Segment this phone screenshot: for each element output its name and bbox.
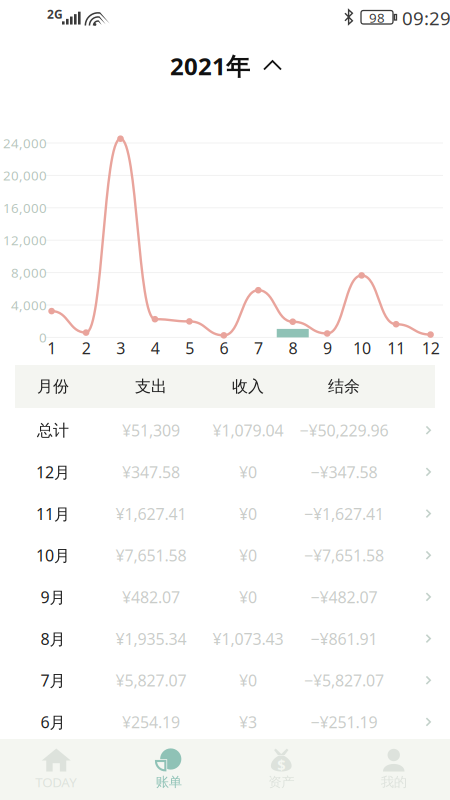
staticText: 98 — [369, 9, 385, 26]
staticText: −¥1,627.41 — [304, 503, 384, 524]
button[interactable]: 9月 — [15, 576, 435, 618]
staticText: 9 — [323, 337, 332, 359]
staticText: TODAY — [35, 773, 77, 791]
staticText: 0 — [39, 328, 47, 346]
staticText: 16,000 — [3, 199, 47, 217]
button[interactable]: 11月 — [15, 493, 435, 534]
staticText: $ — [277, 755, 285, 774]
button[interactable]: 7月 — [15, 659, 435, 701]
staticText: ¥1,079.04 — [212, 420, 283, 441]
staticText: ¥1,627.41 — [115, 503, 186, 524]
staticText: ¥347.58 — [122, 461, 180, 483]
staticText: 10 — [353, 337, 371, 359]
staticText: ¥0 — [239, 586, 257, 608]
staticText: −¥7,651.58 — [304, 545, 384, 566]
staticText: 4,000 — [11, 296, 47, 314]
staticText: 1 — [47, 337, 56, 359]
button[interactable]: 总计 — [15, 409, 435, 451]
staticText: 12 — [422, 337, 440, 359]
staticText: 收入 — [232, 377, 264, 396]
staticText: ¥0 — [239, 545, 257, 566]
staticText: −¥347.58 — [310, 461, 377, 483]
staticText: 8 — [288, 337, 297, 359]
staticText: 12月 — [36, 461, 70, 483]
staticText: 20,000 — [3, 166, 47, 184]
staticText: 资产 — [268, 774, 294, 790]
staticText: 5 — [185, 337, 194, 359]
staticText: 2G — [47, 6, 63, 22]
staticText: 11月 — [36, 503, 70, 524]
staticText: ¥3 — [239, 711, 257, 733]
staticText: 8,000 — [11, 264, 47, 281]
button[interactable]: 8月 — [15, 618, 435, 660]
staticText: ¥51,309 — [122, 420, 180, 441]
staticText: ¥0 — [239, 503, 257, 524]
staticText: 6 — [220, 337, 229, 359]
staticText: 7月 — [40, 670, 65, 691]
staticText: 09:29 — [402, 6, 450, 30]
button[interactable]: 12月 — [15, 451, 435, 493]
staticText: 24,000 — [3, 134, 47, 152]
staticText: 支出 — [135, 377, 167, 396]
button[interactable]: $ — [225, 739, 337, 800]
button[interactable]: TODAY — [0, 739, 112, 800]
staticText: 总计 — [37, 420, 69, 440]
button[interactable]: 2021年 — [170, 52, 282, 80]
button[interactable]: 10月 — [15, 534, 435, 576]
staticText: −¥251.19 — [310, 711, 377, 733]
staticText: 6月 — [40, 711, 65, 733]
staticText: 结余 — [328, 377, 360, 396]
staticText: 12,000 — [3, 231, 47, 249]
staticText: 我的 — [381, 774, 407, 790]
staticText: ¥0 — [239, 461, 257, 483]
staticText: −¥861.91 — [310, 628, 377, 649]
staticText: ¥1,073.43 — [212, 628, 283, 649]
button[interactable]: 6月 — [15, 701, 435, 743]
staticText: 10月 — [36, 545, 70, 566]
staticText: −¥482.07 — [310, 586, 377, 608]
staticText: 4 — [151, 337, 160, 359]
staticText: 3 — [116, 337, 125, 359]
staticText: 账单 — [156, 774, 182, 790]
button[interactable]: 我的 — [337, 739, 450, 800]
staticText: ¥7,651.58 — [115, 545, 186, 566]
staticText: 2 — [82, 337, 91, 359]
staticText: 7 — [254, 337, 263, 359]
staticText: 2021年 — [170, 50, 250, 82]
staticText: −¥50,229.96 — [299, 420, 388, 441]
staticText: −¥5,827.07 — [304, 670, 384, 691]
staticText: 8月 — [40, 628, 65, 649]
staticText: ¥254.19 — [122, 711, 180, 733]
button[interactable]: 账单 — [112, 739, 225, 800]
staticText: ¥1,935.34 — [115, 628, 186, 649]
staticText: 月份 — [37, 377, 69, 396]
staticText: 9月 — [40, 586, 65, 608]
staticText: ¥482.07 — [122, 586, 180, 608]
staticText: ¥0 — [239, 670, 257, 691]
staticText: ¥5,827.07 — [115, 670, 186, 691]
staticText: 11 — [387, 337, 405, 359]
